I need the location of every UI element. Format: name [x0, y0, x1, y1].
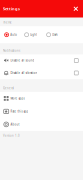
button[interactable]: Disable all vibration — [0, 67, 83, 79]
staticText: Settings — [3, 6, 20, 11]
staticText: More apps — [10, 97, 24, 100]
button[interactable]: Close — [71, 4, 80, 13]
staticText: Disable all sound — [10, 59, 34, 62]
button[interactable]: Disable all sound — [0, 54, 83, 67]
button[interactable]: Rate this app — [0, 105, 83, 118]
staticText: Rate this app — [10, 110, 28, 113]
button[interactable]: Light — [24, 32, 46, 37]
staticText: Notifications — [3, 49, 20, 52]
staticText: About — [10, 123, 19, 126]
staticText: Version 1.0 — [3, 134, 20, 137]
button[interactable]: Dark — [46, 32, 68, 37]
staticText: General — [3, 86, 14, 90]
button[interactable]: Auto — [4, 32, 24, 37]
button[interactable]: About — [0, 118, 83, 131]
button[interactable]: More apps — [0, 92, 83, 105]
staticText: Disable all vibration — [10, 71, 37, 75]
staticText: Theme — [3, 21, 12, 24]
staticText: Dark — [52, 33, 57, 36]
staticText: Auto — [10, 33, 17, 36]
staticText: Light — [30, 33, 37, 36]
